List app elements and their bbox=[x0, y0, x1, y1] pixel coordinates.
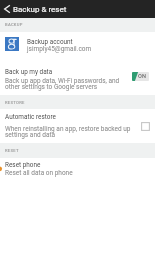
staticText: Automatic restore bbox=[5, 113, 56, 121]
staticText: Backup account bbox=[27, 38, 73, 46]
staticText: ON bbox=[138, 73, 147, 80]
staticText: BACKUP bbox=[5, 22, 23, 27]
staticText: jsimply45@gmail.com bbox=[27, 45, 92, 53]
staticText: Backup & reset bbox=[13, 5, 67, 14]
button[interactable]: Automatic restore bbox=[0, 109, 155, 143]
button[interactable]: Backup account bbox=[0, 32, 155, 58]
staticText: RESET bbox=[5, 148, 19, 153]
button[interactable]: Reset phone bbox=[0, 158, 155, 182]
staticText: Back up app data, Wi-Fi passwords, and o… bbox=[5, 77, 125, 91]
button[interactable]: Back up my data bbox=[0, 58, 155, 95]
button[interactable]: Back up my data switch, on bbox=[132, 72, 149, 81]
staticText: Reset phone bbox=[5, 161, 41, 169]
button[interactable]: Automatic restore checkbox bbox=[141, 122, 150, 131]
staticText: Back up my data bbox=[5, 68, 53, 76]
button[interactable]: Navigate up bbox=[0, 0, 13, 18]
staticText: Reset all data on phone bbox=[5, 169, 73, 177]
staticText: RESTORE bbox=[5, 100, 25, 105]
button[interactable]: Navigate up bbox=[0, 0, 155, 18]
staticText: When reinstalling an app, restore backed… bbox=[5, 125, 131, 139]
